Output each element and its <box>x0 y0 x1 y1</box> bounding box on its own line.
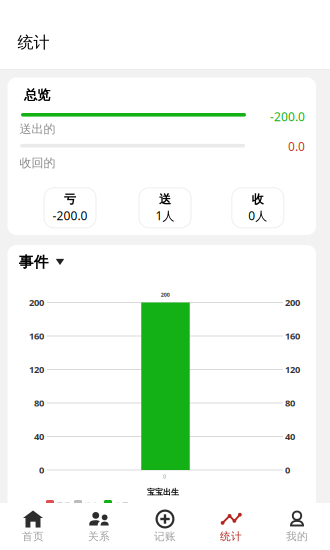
staticText: 送 <box>159 192 171 207</box>
staticText: -200.0 <box>52 208 87 224</box>
staticText: 1人 <box>155 208 174 224</box>
button[interactable]: 首页 <box>0 503 66 550</box>
staticText: 首页 <box>22 530 44 543</box>
button[interactable]: 统计 <box>198 503 264 550</box>
staticText: 0人 <box>248 208 267 224</box>
staticText: 亏 <box>64 192 76 207</box>
button[interactable]: 记账 <box>132 503 198 550</box>
staticText: 亏损 <box>56 501 70 510</box>
staticText: 160 <box>29 330 44 342</box>
button[interactable]: 我的 <box>264 503 330 550</box>
staticText: 事件 <box>19 253 49 271</box>
button[interactable]: 关系 <box>66 503 132 550</box>
staticText: 200 <box>161 291 170 298</box>
staticText: 0.0 <box>288 138 305 154</box>
staticText: 80 <box>285 397 295 409</box>
staticText: 80 <box>34 397 44 409</box>
staticText: 收回的 <box>19 156 55 170</box>
staticText: 120 <box>29 363 44 376</box>
button[interactable]: 事件 <box>19 253 64 271</box>
staticText: 200 <box>29 296 44 309</box>
staticText: 收 <box>252 192 264 207</box>
staticText: 收回 <box>115 501 129 510</box>
staticText: 统计 <box>220 530 242 543</box>
staticText: 统计 <box>17 33 49 52</box>
staticText: 40 <box>285 430 295 443</box>
staticText: 宝宝出生 <box>147 487 179 497</box>
staticText: 40 <box>34 430 44 443</box>
staticText: 200 <box>285 296 300 309</box>
staticText: 0 <box>39 464 44 476</box>
staticText: 120 <box>285 363 300 376</box>
staticText: 送出的 <box>19 122 55 136</box>
staticText: 总览 <box>24 87 50 103</box>
staticText: -200.0 <box>270 108 305 124</box>
staticText: 0 <box>285 464 290 476</box>
staticText: 我的 <box>286 530 308 543</box>
staticText: 0 <box>163 473 166 480</box>
staticText: 送出 <box>85 501 99 510</box>
staticText: 160 <box>285 330 300 342</box>
staticText: 记账 <box>154 530 176 543</box>
staticText: 关系 <box>88 530 110 543</box>
